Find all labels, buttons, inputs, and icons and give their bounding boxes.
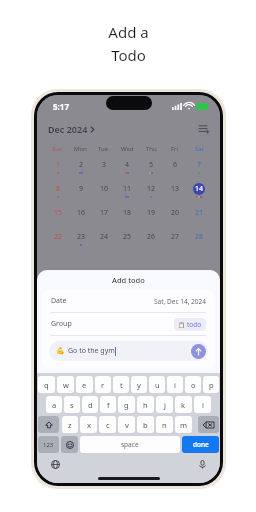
button[interactable]: Change language bbox=[49, 458, 61, 470]
staticText: q bbox=[44, 380, 49, 390]
staticText: 6 bbox=[173, 160, 178, 170]
button[interactable]: 24 bbox=[92, 231, 115, 255]
staticText: Date bbox=[51, 296, 67, 306]
button[interactable]: Dec 2024 bbox=[46, 121, 97, 137]
button[interactable]: 15 bbox=[46, 207, 69, 231]
button[interactable]: q bbox=[38, 376, 55, 393]
button[interactable]: f bbox=[100, 396, 116, 413]
staticText: 19 bbox=[147, 208, 156, 218]
button[interactable]: 5 bbox=[139, 159, 163, 183]
staticText: Thu bbox=[146, 145, 157, 153]
button[interactable]: c bbox=[99, 416, 116, 433]
button[interactable]: a bbox=[46, 396, 62, 413]
button[interactable]: o bbox=[185, 376, 201, 393]
staticText: o bbox=[191, 380, 196, 390]
staticText: space bbox=[121, 440, 139, 449]
staticText: 20 bbox=[171, 208, 180, 218]
staticText: n bbox=[162, 420, 167, 430]
button[interactable]: Backspace bbox=[198, 416, 219, 433]
button[interactable]: r bbox=[95, 376, 111, 393]
button[interactable]: w bbox=[57, 376, 74, 393]
button[interactable]: y bbox=[131, 376, 147, 393]
button[interactable]: i bbox=[167, 376, 183, 393]
button[interactable]: 123 bbox=[38, 436, 59, 453]
button[interactable]: 13 bbox=[163, 183, 187, 207]
button[interactable]: Date bbox=[42, 290, 215, 312]
button[interactable]: e bbox=[76, 376, 93, 393]
button[interactable]: Emoji bbox=[61, 436, 78, 453]
staticText: todo bbox=[187, 320, 202, 329]
button[interactable]: 20 bbox=[163, 207, 187, 231]
button[interactable]: j bbox=[156, 396, 173, 413]
button[interactable]: space bbox=[80, 436, 180, 453]
button[interactable]: l bbox=[194, 396, 211, 413]
staticText: Todo bbox=[111, 45, 146, 65]
staticText: 1 bbox=[56, 160, 61, 170]
button[interactable]: 17 bbox=[92, 207, 115, 231]
staticText: 18 bbox=[123, 208, 132, 218]
button[interactable]: 11 bbox=[115, 183, 139, 207]
button[interactable]: Add list bbox=[197, 122, 211, 136]
staticText: 📋 bbox=[178, 322, 185, 328]
button[interactable]: k bbox=[175, 396, 192, 413]
button[interactable]: x bbox=[80, 416, 97, 433]
button[interactable]: n bbox=[156, 416, 173, 433]
staticText: 3 bbox=[102, 160, 107, 170]
staticText: 17 bbox=[100, 208, 109, 218]
button[interactable]: v bbox=[118, 416, 135, 433]
button[interactable]: u bbox=[149, 376, 165, 393]
staticText: 21 bbox=[195, 208, 204, 218]
button[interactable]: g bbox=[118, 396, 135, 413]
button[interactable]: 2 bbox=[69, 159, 92, 183]
button[interactable]: shift bbox=[38, 416, 59, 433]
button[interactable]: 23 bbox=[69, 231, 92, 255]
button[interactable]: s bbox=[64, 396, 80, 413]
button[interactable]: 4 bbox=[115, 159, 139, 183]
staticText: 28 bbox=[195, 232, 204, 242]
button[interactable]: 1 bbox=[46, 159, 69, 183]
button[interactable]: done bbox=[182, 436, 219, 453]
button[interactable]: 28 bbox=[187, 231, 211, 255]
staticText: b bbox=[143, 420, 148, 430]
button[interactable]: 9 bbox=[69, 183, 92, 207]
button[interactable]: 8 bbox=[46, 183, 69, 207]
button[interactable]: 26 bbox=[139, 231, 163, 255]
button[interactable]: d bbox=[82, 396, 98, 413]
staticText: a bbox=[52, 400, 57, 410]
button[interactable]: t bbox=[113, 376, 129, 393]
button[interactable]: 14 bbox=[187, 183, 211, 207]
staticText: y bbox=[137, 380, 141, 390]
button[interactable]: 7 bbox=[187, 159, 211, 183]
button[interactable]: 16 bbox=[69, 207, 92, 231]
staticText: Add a bbox=[108, 22, 149, 42]
button[interactable]: Submit todo bbox=[191, 344, 206, 359]
button[interactable]: m bbox=[175, 416, 192, 433]
button[interactable]: 12 bbox=[139, 183, 163, 207]
button[interactable]: 📋 bbox=[174, 318, 206, 331]
button[interactable]: b bbox=[137, 416, 154, 433]
button[interactable]: z bbox=[62, 416, 78, 433]
staticText: 5 bbox=[149, 160, 154, 170]
button[interactable]: 10 bbox=[92, 183, 115, 207]
button[interactable]: 25 bbox=[115, 231, 139, 255]
button[interactable]: 19 bbox=[139, 207, 163, 231]
staticText: 25 bbox=[123, 232, 132, 242]
button[interactable]: 22 bbox=[46, 231, 69, 255]
button[interactable]: h bbox=[137, 396, 154, 413]
button[interactable]: 3 bbox=[92, 159, 115, 183]
button[interactable]: 27 bbox=[163, 231, 187, 255]
staticText: 15 bbox=[54, 208, 63, 218]
staticText: j bbox=[164, 400, 166, 410]
button[interactable]: 18 bbox=[115, 207, 139, 231]
button[interactable]: 💪 bbox=[49, 341, 208, 361]
staticText: g bbox=[124, 400, 129, 410]
staticText: Tue bbox=[98, 145, 109, 153]
staticText: z bbox=[68, 420, 72, 430]
button[interactable]: p bbox=[203, 376, 219, 393]
staticText: t bbox=[120, 380, 123, 390]
staticText: Fri bbox=[171, 145, 179, 153]
button[interactable]: 6 bbox=[163, 159, 187, 183]
button[interactable]: Voice input bbox=[196, 458, 208, 470]
button[interactable]: 21 bbox=[187, 207, 211, 231]
staticText: 5:17 bbox=[53, 101, 69, 112]
